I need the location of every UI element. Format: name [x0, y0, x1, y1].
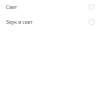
staticText: Свет [6, 4, 18, 11]
staticText: Звук и свет [6, 19, 33, 26]
button[interactable]: Свет [0, 0, 100, 14]
button[interactable]: Toggle Звук и свет [87, 18, 96, 27]
button[interactable]: Звук и свет [0, 15, 100, 29]
button[interactable]: Toggle Свет [87, 3, 96, 12]
